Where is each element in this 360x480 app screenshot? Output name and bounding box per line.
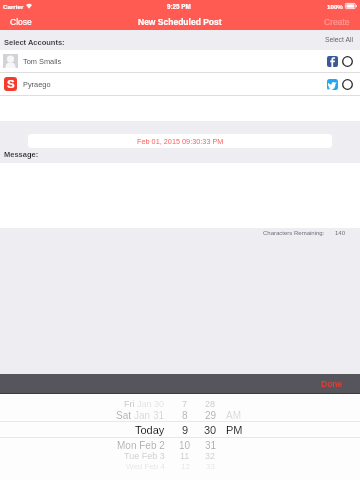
staticText: Select All [325, 36, 353, 44]
button[interactable]: Done [311, 375, 360, 392]
staticText: Tom Smalls [23, 57, 62, 65]
staticText: 33 [206, 462, 215, 471]
button[interactable]: Fri [0, 394, 360, 480]
staticText: Pyraego [23, 80, 51, 88]
button[interactable]: Select account [341, 55, 354, 68]
staticText: Jan 31 [134, 410, 165, 421]
staticText: 11 [180, 451, 190, 461]
staticText: 31 [205, 440, 217, 451]
staticText: 8 [182, 410, 188, 421]
staticText: Fri [124, 399, 135, 409]
button[interactable]: S [0, 73, 360, 95]
staticText: 28 [205, 399, 216, 409]
staticText: 30 [204, 424, 217, 436]
staticText: 7 [182, 399, 188, 409]
staticText: Wed Feb 4 [126, 462, 165, 471]
staticText: 10 [179, 440, 191, 451]
staticText: Select Accounts: [4, 38, 65, 46]
staticText: Create [324, 17, 350, 26]
staticText: Feb 01, 2015 09:30:33 PM [137, 137, 224, 145]
staticText: AM [226, 410, 241, 421]
staticText: Today [135, 424, 165, 436]
button[interactable]: Close [0, 13, 42, 30]
staticText: Jan 30 [137, 399, 165, 409]
button[interactable]: Tom Smalls [0, 50, 360, 72]
staticText: Tue Feb 3 [124, 451, 165, 461]
staticText: PM [226, 424, 243, 436]
staticText: Sat [116, 410, 132, 421]
staticText: Carrier [3, 3, 24, 10]
staticText: Done [321, 379, 343, 388]
staticText: S [7, 78, 15, 91]
button[interactable]: Create [314, 13, 360, 30]
staticText: New Scheduled Post [138, 17, 222, 26]
staticText: Mon Feb 2 [117, 440, 165, 451]
button[interactable]: Feb 01, 2015 09:30:33 PM [28, 134, 332, 148]
button[interactable]: Select All [318, 32, 360, 48]
staticText: 9 [182, 424, 189, 436]
button[interactable]: Select account [341, 78, 354, 91]
staticText: Close [10, 17, 32, 26]
staticText: 29 [205, 410, 217, 421]
staticText: Characters Remaining: [263, 230, 325, 237]
staticText: Message: [4, 150, 39, 158]
staticText: 100% [327, 3, 343, 10]
staticText: 9:25 PM [167, 3, 191, 10]
staticText: 140 [335, 230, 346, 237]
staticText: 12 [181, 462, 190, 471]
staticText: 32 [205, 451, 216, 461]
